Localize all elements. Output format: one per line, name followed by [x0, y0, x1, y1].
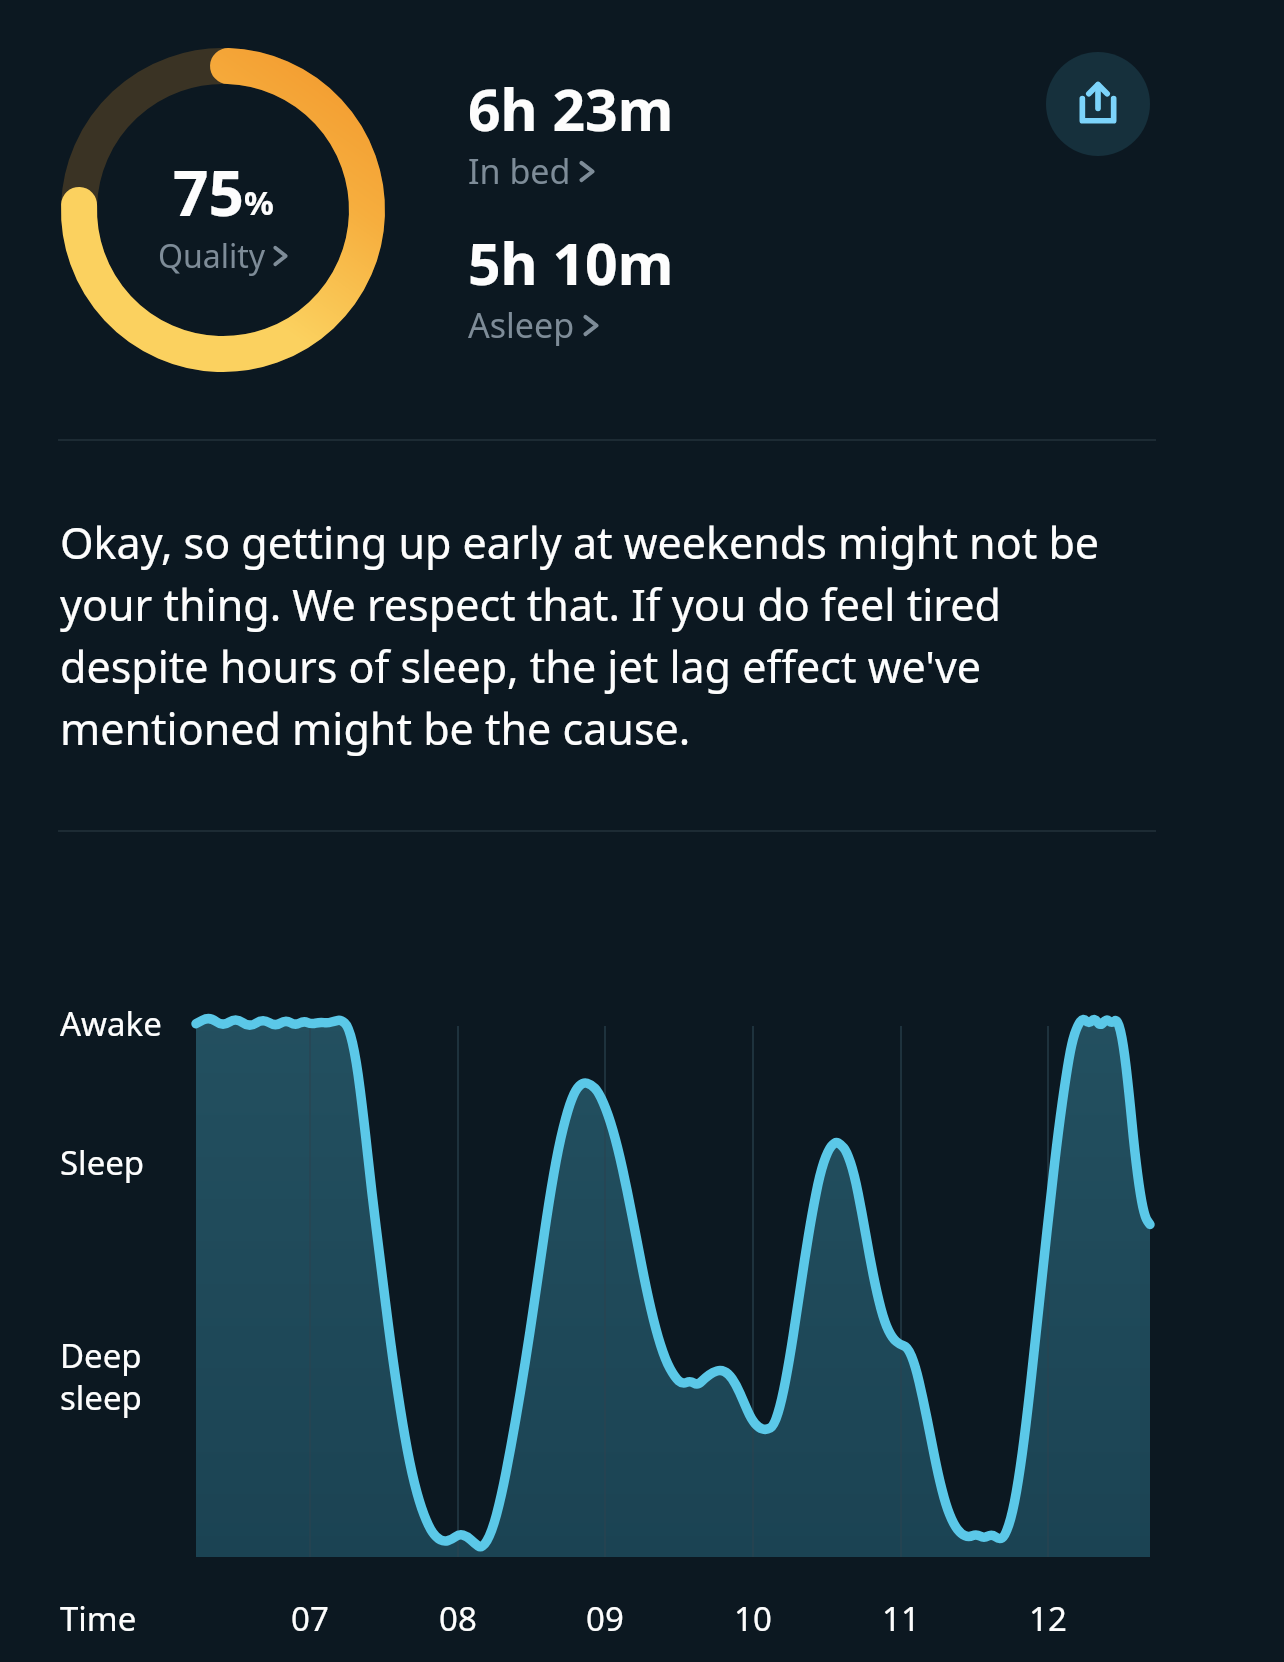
- staticText: 12: [1029, 1596, 1067, 1641]
- staticText: 5h 10m: [468, 224, 674, 302]
- staticText: 6h 23m: [468, 70, 674, 148]
- button[interactable]: 6h 23m: [468, 70, 798, 194]
- staticText: Okay, so getting up early at weekends mi…: [60, 513, 1118, 757]
- staticText: 08: [439, 1596, 477, 1641]
- staticText: Deep sleep: [60, 1333, 142, 1420]
- button[interactable]: Share: [1046, 52, 1150, 156]
- staticText: Quality: [158, 234, 266, 278]
- button[interactable]: 75: [120, 150, 326, 278]
- staticText: 09: [586, 1596, 624, 1641]
- staticText: Time: [60, 1596, 137, 1641]
- staticText: 11: [882, 1596, 920, 1641]
- staticText: 75: [173, 150, 244, 234]
- staticText: 10: [734, 1596, 772, 1641]
- staticText: %: [244, 180, 274, 225]
- staticText: Awake: [60, 1001, 162, 1046]
- button[interactable]: 5h 10m: [468, 224, 798, 348]
- staticText: In bed: [468, 148, 571, 194]
- staticText: 07: [291, 1596, 329, 1641]
- staticText: Sleep: [60, 1140, 145, 1185]
- staticText: Asleep: [468, 302, 575, 348]
